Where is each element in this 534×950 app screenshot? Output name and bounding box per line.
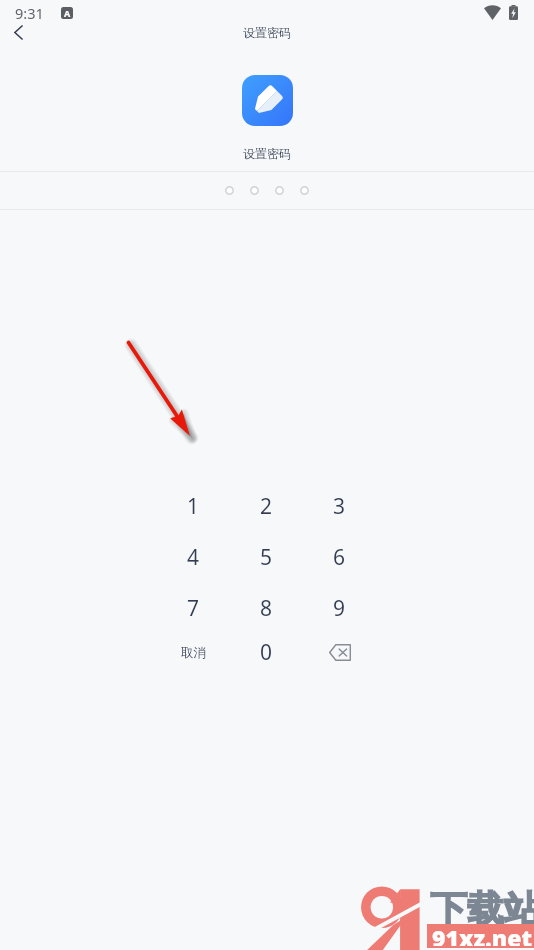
button[interactable]: 9 bbox=[303, 583, 376, 634]
staticText: 91xz.net bbox=[432, 922, 532, 946]
staticText: 9:31 bbox=[15, 3, 44, 23]
button[interactable]: 6 bbox=[303, 532, 376, 583]
staticText: 7 bbox=[187, 594, 200, 623]
button[interactable]: 2 bbox=[230, 481, 303, 532]
button[interactable]: 1 bbox=[157, 481, 230, 532]
button[interactable]: Back bbox=[6, 20, 30, 44]
button[interactable]: 设置密码 bbox=[242, 75, 293, 126]
staticText: 2 bbox=[260, 492, 273, 521]
other: Backspace bbox=[329, 644, 351, 661]
staticText: 9 bbox=[333, 594, 346, 623]
button[interactable]: 3 bbox=[303, 481, 376, 532]
button[interactable]: 8 bbox=[230, 583, 303, 634]
button[interactable]: 7 bbox=[157, 583, 230, 634]
button[interactable]: 4 bbox=[157, 532, 230, 583]
staticText: 取消 bbox=[181, 645, 206, 661]
staticText: 8 bbox=[260, 594, 273, 623]
staticText: 设置密码 bbox=[243, 25, 291, 40]
staticText: 6 bbox=[333, 543, 346, 572]
button[interactable]: 取消 bbox=[157, 627, 230, 678]
staticText: 3 bbox=[333, 492, 346, 521]
staticText: 下载站 bbox=[430, 886, 534, 933]
staticText: 0 bbox=[260, 638, 273, 667]
staticText: 设置密码 bbox=[243, 146, 291, 161]
staticText: 1 bbox=[187, 492, 200, 521]
staticText: 5 bbox=[260, 543, 273, 572]
button[interactable]: 5 bbox=[230, 532, 303, 583]
button[interactable]: Backspace bbox=[303, 627, 376, 678]
staticText: 4 bbox=[187, 543, 200, 572]
staticText: A bbox=[64, 7, 71, 19]
button[interactable]: 0 bbox=[230, 627, 303, 678]
